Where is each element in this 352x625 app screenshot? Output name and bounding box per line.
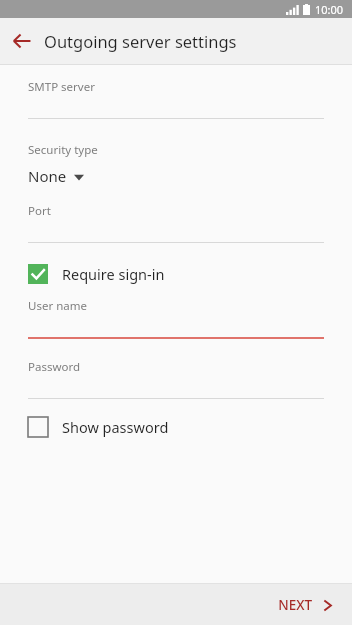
button[interactable]: Back [0,19,44,63]
staticText: Outgoing server settings [44,30,237,52]
button[interactable]: Show password [0,413,352,441]
button[interactable]: None [0,164,352,188]
staticText: NEXT [278,596,312,614]
button[interactable]: NEXT [260,588,352,622]
staticText: Security type [28,142,98,158]
staticText: User name [28,298,87,314]
staticText: Show password [62,417,169,437]
staticText: None [28,166,67,186]
staticText: Port [28,203,51,219]
button[interactable]: Require sign-in [0,260,352,288]
staticText: Password [28,359,81,375]
staticText: 10:00 [315,2,344,17]
staticText: SMTP server [28,79,95,95]
staticText: Require sign-in [62,264,165,284]
